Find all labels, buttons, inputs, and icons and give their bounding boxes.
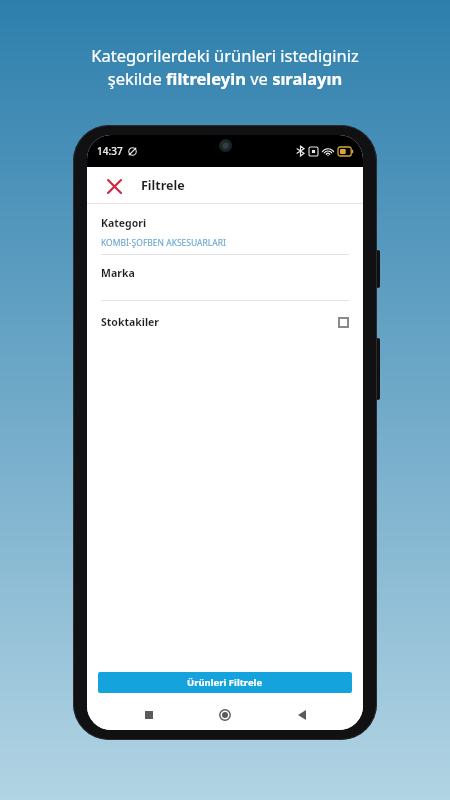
staticText: KOMBİ-ŞOFBEN AKSESUARLARI	[101, 237, 226, 249]
staticText: Stoktakiler	[101, 315, 160, 329]
button[interactable]: Kategori	[87, 204, 363, 254]
button[interactable]: Son uygulamalar	[134, 700, 164, 730]
staticText: Kategori	[101, 216, 147, 230]
staticText: Filtrele	[141, 177, 185, 194]
button[interactable]: Geri	[287, 700, 317, 730]
button[interactable]: Marka	[87, 255, 363, 300]
button[interactable]: Kapat	[101, 173, 127, 199]
button[interactable]: Ana ekran	[210, 700, 240, 730]
staticText: 14:37	[97, 144, 123, 158]
button[interactable]: Stoktakiler	[87, 301, 363, 343]
staticText: Marka	[101, 266, 135, 280]
staticText: Ürünleri Filtrele	[187, 676, 263, 689]
button[interactable]: Ürünleri Filtrele	[98, 672, 352, 693]
staticText: Kategorilerdeki ürünleri istediginiz şek…	[30, 44, 420, 90]
